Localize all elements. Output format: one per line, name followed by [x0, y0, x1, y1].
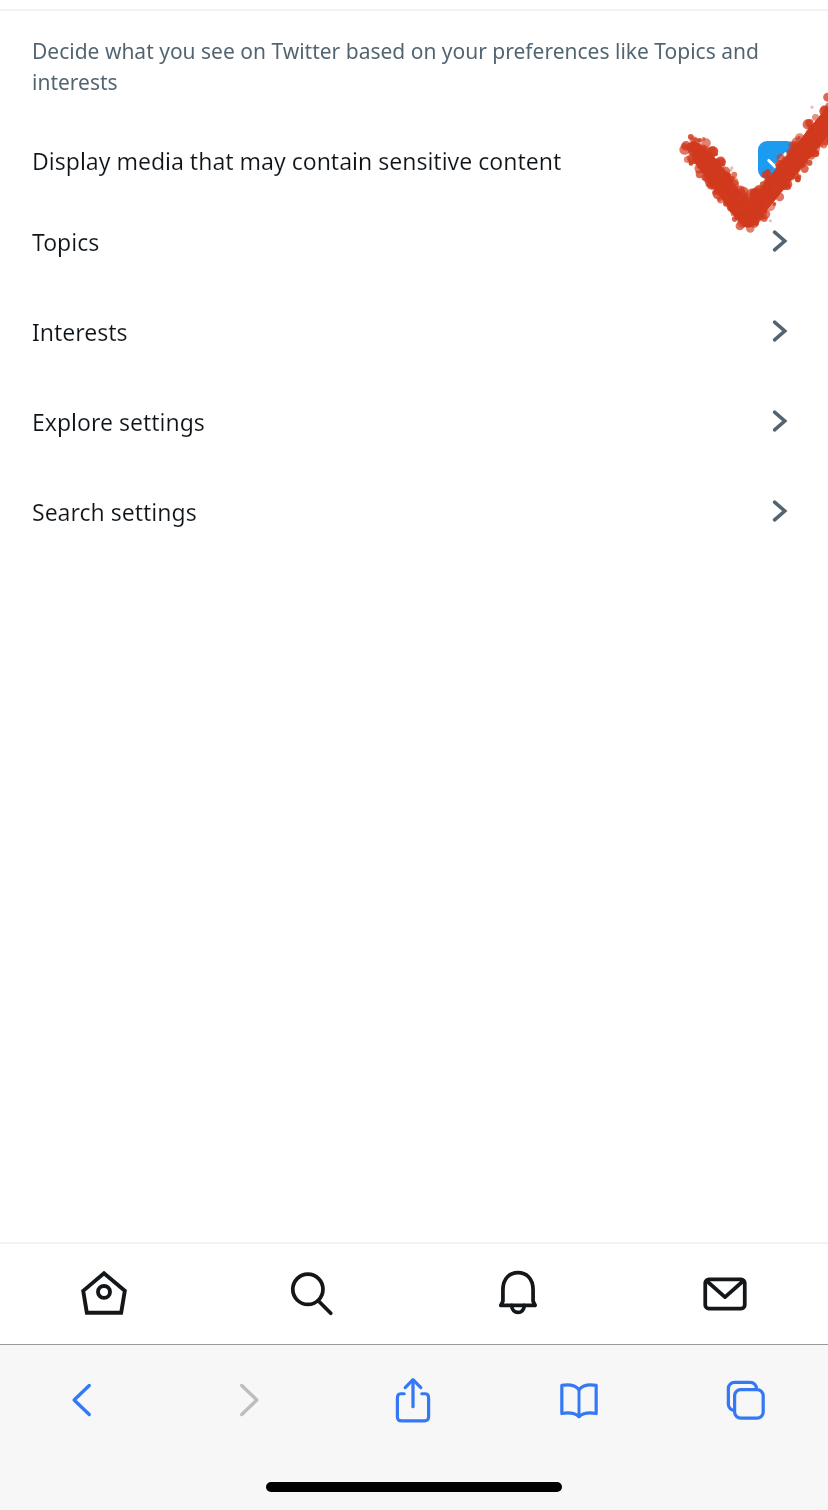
button[interactable]: Notifications — [414, 1244, 621, 1344]
button[interactable]: Tabs — [662, 1345, 828, 1455]
staticText: Search settings — [32, 496, 766, 527]
button[interactable]: Interests — [0, 286, 828, 376]
button[interactable]: Topics — [0, 196, 828, 286]
staticText: Decide what you see on Twitter based on … — [32, 37, 780, 96]
button[interactable]: Search — [207, 1244, 414, 1344]
staticText: Interests — [32, 316, 766, 347]
button[interactable]: Share — [330, 1345, 496, 1455]
button[interactable]: Forward — [165, 1345, 330, 1455]
button[interactable]: Home — [0, 1244, 207, 1344]
staticText: Topics — [32, 226, 766, 257]
button[interactable]: Display media that may contain sensitive… — [0, 124, 828, 196]
button[interactable]: Messages — [621, 1244, 828, 1344]
staticText: Display media that may contain sensitive… — [32, 145, 758, 176]
button[interactable]: Back — [0, 1345, 165, 1455]
button[interactable]: Bookmarks — [496, 1345, 662, 1455]
staticText: Explore settings — [32, 406, 766, 437]
button[interactable]: Explore settings — [0, 376, 828, 466]
button[interactable]: Search settings — [0, 466, 828, 556]
